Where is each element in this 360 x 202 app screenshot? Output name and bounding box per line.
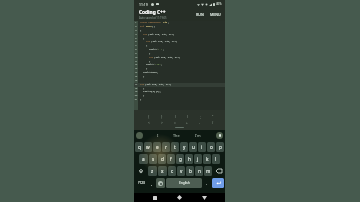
staticText: } xyxy=(143,94,145,97)
button[interactable]: o xyxy=(207,142,215,152)
staticText: 9 xyxy=(134,52,138,55)
staticText: 19 xyxy=(134,90,138,93)
button[interactable]: i xyxy=(198,142,206,152)
button[interactable]: w xyxy=(144,142,152,152)
button[interactable]: ?123 xyxy=(135,178,147,188)
button[interactable]: " xyxy=(210,114,216,119)
button[interactable]: Enter xyxy=(212,178,224,188)
button[interactable]: Emoji xyxy=(156,178,165,188)
staticText: k xyxy=(206,156,209,162)
button[interactable]: ( xyxy=(172,114,178,119)
staticText: r xyxy=(165,144,167,150)
staticText: { xyxy=(146,44,148,47)
staticText: for xyxy=(143,33,148,36)
staticText: a xyxy=(142,156,145,162)
staticText: ; xyxy=(161,63,163,66)
button[interactable]: b xyxy=(186,166,194,176)
staticText: c xyxy=(171,168,174,174)
staticText: ; xyxy=(168,21,170,24)
button[interactable]: Period xyxy=(203,178,211,188)
button[interactable]: y xyxy=(180,142,188,152)
staticText: 12 xyxy=(134,63,138,66)
button[interactable]: > xyxy=(159,120,165,125)
button[interactable]: k xyxy=(203,154,211,164)
button[interactable]: u xyxy=(189,142,197,152)
staticText: cout<< xyxy=(146,63,155,66)
button[interactable]: Shift xyxy=(135,166,147,176)
button[interactable]: Home xyxy=(175,193,184,202)
button[interactable]: Comma xyxy=(148,178,155,188)
staticText: { xyxy=(143,37,145,40)
button[interactable]: z xyxy=(148,166,157,176)
button[interactable]: { xyxy=(146,114,152,119)
button[interactable]: English xyxy=(166,178,202,188)
staticText: 17 xyxy=(134,83,138,86)
button[interactable]: s xyxy=(149,154,157,164)
staticText: s xyxy=(152,156,155,162)
staticText: RUN xyxy=(196,12,204,17)
button[interactable]: t xyxy=(171,142,179,152)
staticText: Coding C++ xyxy=(139,9,166,16)
button[interactable]: v xyxy=(177,166,185,176)
button[interactable]: Backspace xyxy=(213,166,224,176)
staticText: w xyxy=(146,144,150,150)
button[interactable]: Recents xyxy=(150,193,159,202)
staticText: 13 xyxy=(134,67,138,70)
staticText: z xyxy=(151,168,154,174)
staticText: n xyxy=(198,168,201,174)
button[interactable]: m xyxy=(204,166,212,176)
staticText: for xyxy=(149,56,154,59)
staticText: 4 xyxy=(134,33,138,36)
staticText: MENU xyxy=(210,12,221,17)
staticText: } xyxy=(161,115,163,119)
staticText: . xyxy=(206,181,208,186)
button[interactable]: h xyxy=(185,154,193,164)
staticText: 15 xyxy=(134,75,138,78)
staticText: 21 xyxy=(134,98,138,101)
staticText: 10 xyxy=(134,56,138,59)
button[interactable]: a xyxy=(139,154,148,164)
button[interactable]: - xyxy=(197,120,203,125)
staticText: 16 xyxy=(134,79,138,82)
button[interactable]: d xyxy=(158,154,166,164)
staticText: j xyxy=(197,156,199,162)
staticText: main xyxy=(146,25,152,28)
button[interactable]: ) xyxy=(184,114,190,119)
button[interactable]: f xyxy=(167,154,175,164)
staticText: / xyxy=(212,121,214,125)
button[interactable]: + xyxy=(184,120,190,125)
staticText: ?123 xyxy=(138,181,145,185)
button[interactable]: < xyxy=(146,120,152,125)
staticText: = xyxy=(174,121,176,125)
staticText: 7 xyxy=(134,44,138,47)
button[interactable]: n xyxy=(195,166,203,176)
button[interactable]: x xyxy=(158,166,167,176)
staticText: - xyxy=(199,121,201,125)
staticText: q xyxy=(138,144,141,150)
button[interactable]: RUN xyxy=(195,10,205,19)
button[interactable]: ; xyxy=(197,114,203,119)
staticText: () xyxy=(152,25,155,28)
staticText: The xyxy=(173,133,180,138)
staticText: , xyxy=(151,181,153,186)
staticText: } xyxy=(149,60,151,63)
button[interactable]: Voice input xyxy=(216,132,223,139)
button[interactable]: Gboard menu xyxy=(136,132,143,139)
button[interactable]: l xyxy=(212,154,220,164)
button[interactable]: c xyxy=(168,166,176,176)
button[interactable]: q xyxy=(135,142,143,152)
button[interactable]: MENU xyxy=(209,10,222,19)
button[interactable]: j xyxy=(194,154,202,164)
staticText: h xyxy=(188,156,191,162)
button[interactable]: p xyxy=(216,142,224,152)
button[interactable]: Back xyxy=(200,193,209,202)
button[interactable]: = xyxy=(172,120,178,125)
staticText: " xyxy=(212,115,214,119)
button[interactable]: r xyxy=(162,142,170,152)
button[interactable]: e xyxy=(153,142,161,152)
button[interactable]: / xyxy=(210,120,216,125)
staticText: + xyxy=(186,121,188,125)
button[interactable]: g xyxy=(176,154,184,164)
staticText: { xyxy=(140,29,142,32)
button[interactable]: } xyxy=(159,114,165,119)
